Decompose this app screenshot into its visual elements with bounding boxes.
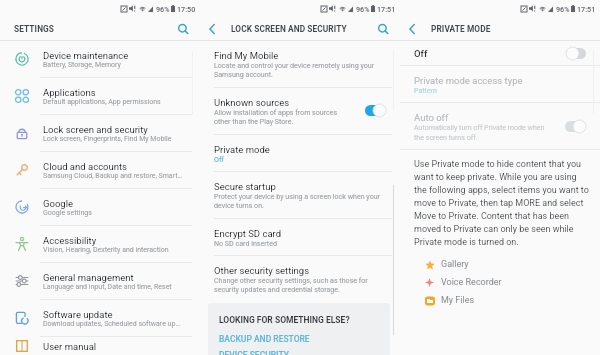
button[interactable]: Device maintenance [0,41,200,77]
staticText: 17:50 [177,5,196,13]
staticText: No SD card inserted [214,239,277,247]
button[interactable]: Search [170,17,196,41]
staticText: Protect your device by using a screen lo… [214,192,392,210]
button[interactable]: General management [0,263,200,299]
staticText: Voice Recorder [441,277,502,288]
button[interactable]: Unknown sources [200,88,400,134]
button[interactable]: Find My Mobile [200,41,400,87]
button[interactable]: Gallery [400,255,600,273]
staticText: Change other security settings, such as … [214,276,392,294]
button[interactable]: Secure startup [200,172,400,218]
button[interactable]: Google [0,189,200,225]
button[interactable]: Encrypt SD card [200,219,400,255]
staticText: User manual [43,341,97,352]
staticText: Other security settings [214,265,310,276]
button[interactable]: Auto off [400,103,600,149]
staticText: 96% [356,5,370,13]
staticText: Cloud and accounts [43,161,128,172]
staticText: 96% [156,5,170,13]
staticText: Lock screen and security [43,124,148,135]
staticText: LOCK SCREEN AND SECURITY [231,24,347,34]
button[interactable]: Private mode [200,135,400,171]
button[interactable]: Turn off [365,104,386,117]
staticText: Off [214,155,224,163]
button[interactable]: Off [400,41,600,65]
staticText: Download updates, Scheduled software up… [43,320,181,328]
staticText: PRIVATE MODE [431,24,491,34]
staticText: Allow installation of apps from sources … [214,108,349,126]
staticText: Language and input, Date and time, Reset [43,283,172,291]
button[interactable]: User manual [0,337,200,355]
staticText: Device maintenance [43,50,129,61]
staticText: Battery, Storage, Memory [43,61,121,69]
staticText: Automatically turn off Private mode when… [414,123,551,141]
staticText: Unknown sources [214,97,290,108]
staticText: LOOKING FOR SOMETHING ELSE? [219,315,350,325]
button[interactable]: Turn off [565,120,586,133]
staticText: Gallery [441,259,469,270]
button[interactable]: Navigate up [400,17,424,41]
button[interactable]: Private mode access type [400,66,600,102]
staticText: Lock screen, Fingerprints, Find My Mobil… [43,135,172,143]
button[interactable]: Navigate up [200,17,224,41]
button[interactable]: Voice Recorder [400,273,600,291]
staticText: Vision, Hearing, Dexterity and interacti… [43,246,169,254]
staticText: Auto off [414,112,449,123]
staticText: Applications [43,87,96,98]
button[interactable]: Applications [0,78,200,114]
button[interactable]: Lock screen and security [0,115,200,151]
button[interactable]: Cloud and accounts [0,152,200,188]
staticText: Default applications, App permissions [43,98,161,106]
staticText: My Files [441,295,475,306]
staticText: Secure startup [214,181,276,192]
button[interactable]: Accessibility [0,226,200,262]
staticText: Private mode access type [414,75,523,86]
staticText: Pattern [414,86,438,94]
staticText: Locate and control your device remotely … [214,61,392,79]
staticText: Google settings [43,209,92,217]
staticText: Google [43,198,73,209]
button[interactable]: DEVICE SECURITY [219,350,289,355]
staticText: SETTINGS [14,24,55,34]
staticText: 17:51 [577,5,596,13]
button[interactable]: Search [370,17,396,41]
staticText: Private mode [214,144,270,155]
staticText: Off [414,48,566,59]
staticText: Samsung Cloud, Backup and restore, Smart… [43,172,183,180]
staticText: Software update [43,309,113,320]
button[interactable]: BACKUP AND RESTORE [219,334,310,344]
button[interactable]: My Files [400,291,600,309]
button[interactable]: Turn on [566,47,587,60]
staticText: General management [43,272,134,283]
staticText: 17:51 [377,5,396,13]
staticText: Encrypt SD card [214,228,282,239]
button[interactable]: Software update [0,300,200,336]
staticText: Use Private mode to hide content that yo… [414,159,590,247]
staticText: Accessibility [43,235,97,246]
button[interactable]: Other security settings [200,256,400,302]
staticText: Find My Mobile [214,50,279,61]
staticText: 96% [556,5,570,13]
